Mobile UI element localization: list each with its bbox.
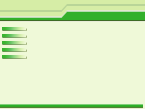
button[interactable] [0,27,145,34]
button[interactable] [0,41,145,48]
button[interactable]: Bottom bar [0,100,145,109]
button[interactable]: Tabs [0,0,145,22]
button[interactable] [0,34,145,41]
button[interactable] [0,48,145,55]
button[interactable] [0,55,145,62]
